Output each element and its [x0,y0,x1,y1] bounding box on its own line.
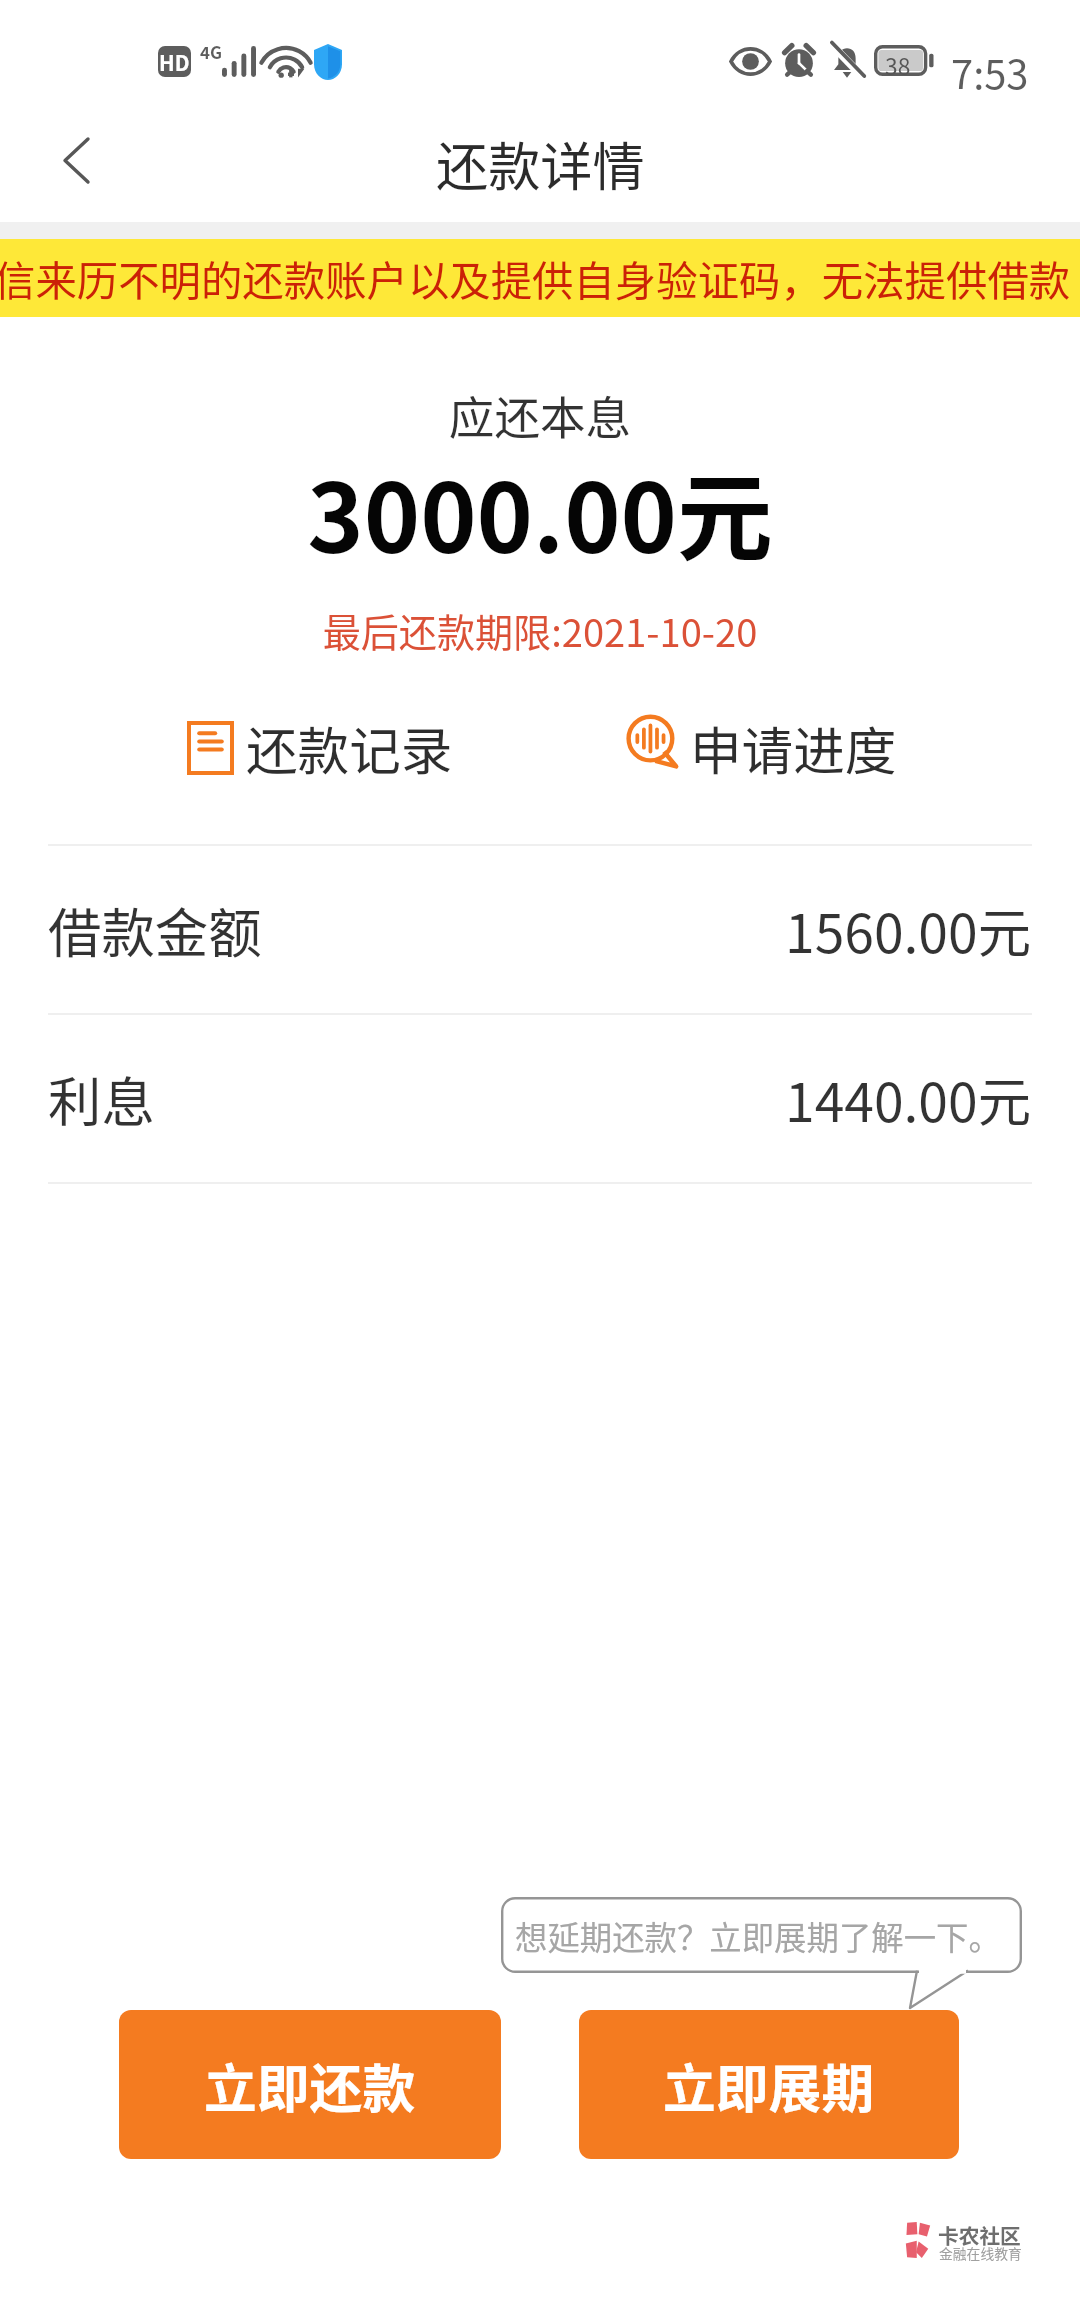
staticText: HD [159,47,190,77]
staticText: 1560.00元 [785,891,1032,968]
staticText: 申请进度 [690,710,897,785]
staticText: 还款记录 [246,710,453,785]
staticText: 3000.00元 [0,442,1080,581]
staticText: 立即展期 [663,2047,875,2123]
button[interactable]: 利息 [0,1015,1080,1182]
staticText: 金融在线教育 [939,2243,1022,2263]
staticText: 4G [200,40,222,64]
button[interactable]: Back [22,118,114,210]
button[interactable]: 立即还款 [119,2010,501,2159]
button[interactable]: 还款记录 [187,710,453,785]
staticText: 1440.00元 [785,1060,1032,1137]
staticText: 信来历不明的还款账户以及提供自身验证码，无法提供借款 [0,248,1071,308]
staticText: 卡农社区 [938,2220,1021,2250]
button[interactable]: 借款金额 [0,846,1080,1013]
button[interactable]: 申请进度 [626,710,897,785]
staticText: 应还本息 [0,382,1080,448]
staticText: 最后还款期限:2021-10-20 [0,603,1080,658]
staticText: 想延期还款？立即展期了解一下。 [515,1912,1001,1959]
button[interactable]: 想延期还款？立即展期了解一下。 [501,1897,1022,1973]
staticText: 38 [885,49,911,82]
staticText: 还款详情 [436,125,645,201]
staticText: 借款金额 [48,891,262,968]
staticText: 利息 [48,1060,155,1137]
staticText: 7:53 [951,43,1029,101]
staticText: 立即还款 [204,2047,416,2123]
button[interactable]: 立即展期 [579,2010,959,2159]
